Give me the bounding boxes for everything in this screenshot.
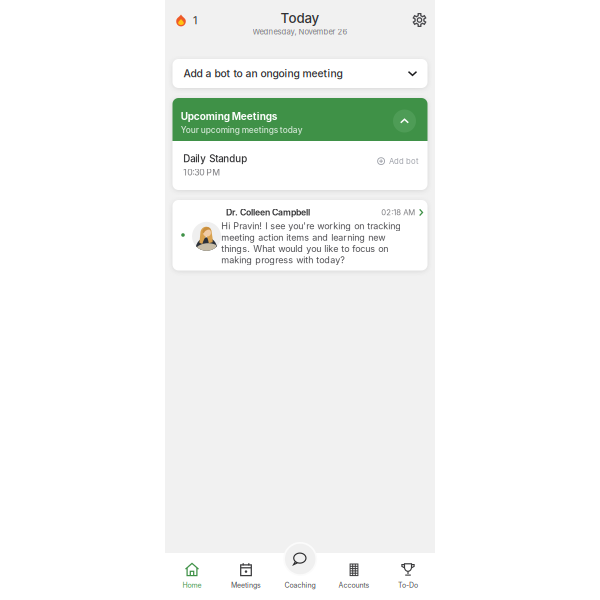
staticText: Accounts <box>338 581 369 589</box>
button[interactable]: Coaching <box>283 542 317 576</box>
button[interactable]: To-Do <box>381 553 435 600</box>
staticText: Today <box>280 10 319 26</box>
staticText: Your upcoming meetings today <box>181 125 303 135</box>
staticText: 02:18 AM <box>381 208 415 217</box>
staticText: Add bot <box>389 156 419 166</box>
staticText: Add a bot to an ongoing meeting <box>183 67 342 80</box>
staticText: Meetings <box>231 581 261 589</box>
button[interactable]: Add a bot to an ongoing meeting <box>172 59 427 88</box>
staticText: 1 <box>193 14 197 27</box>
button[interactable]: Upcoming Meetings <box>172 98 427 141</box>
button[interactable]: Daily Standup <box>172 141 427 190</box>
staticText: Upcoming Meetings <box>181 110 278 122</box>
button[interactable]: Dr. Colleen Campbell <box>172 200 427 270</box>
button[interactable]: Meetings <box>219 553 273 600</box>
staticText: 10:30 PM <box>183 167 220 178</box>
staticText: Home <box>182 581 201 589</box>
button[interactable]: Settings <box>408 9 430 31</box>
button[interactable]: Coaching <box>273 553 327 600</box>
staticText: Dr. Colleen Campbell <box>226 207 310 218</box>
staticText: Coaching <box>284 581 315 589</box>
button[interactable]: Accounts <box>327 553 381 600</box>
button[interactable]: Home <box>165 553 219 600</box>
staticText: Hi Pravin! I see you're working on track… <box>221 221 401 265</box>
staticText: Wednesday, November 26 <box>252 27 347 36</box>
staticText: To-Do <box>398 581 418 589</box>
staticText: Daily Standup <box>183 153 247 165</box>
